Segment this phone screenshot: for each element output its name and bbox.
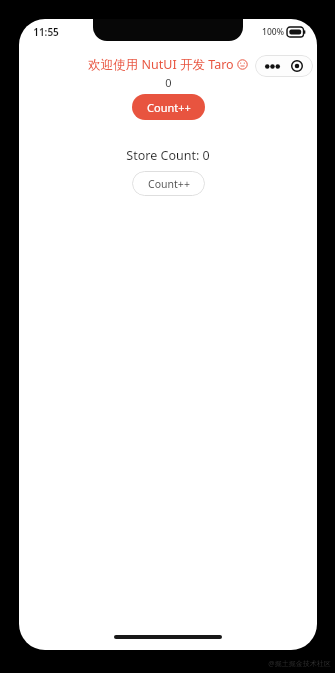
staticText: @掘土掘金技术社区 (268, 659, 331, 669)
staticText: 0 (165, 75, 172, 90)
staticText: Count++ (147, 100, 191, 115)
button[interactable]: Mini program menu (255, 55, 313, 77)
button[interactable]: Count++ (132, 94, 205, 120)
staticText: 100% (262, 26, 284, 38)
button[interactable]: Count++ (132, 171, 205, 196)
staticText: Store Count: 0 (126, 147, 210, 164)
staticText: 11:55 (33, 25, 59, 39)
staticText: 欢迎使用 NutUI 开发 Taro (88, 56, 234, 73)
staticText: Count++ (148, 177, 190, 191)
